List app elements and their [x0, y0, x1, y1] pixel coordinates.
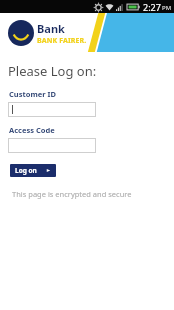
- staticText: Bank: [37, 21, 65, 36]
- staticText: Log on: [15, 166, 37, 175]
- button[interactable]: Log on: [10, 164, 56, 177]
- staticText: This page is encrypted and secure: [12, 189, 132, 199]
- staticText: Access Code: [9, 125, 55, 135]
- button[interactable]: [8, 102, 96, 117]
- staticText: 2:27: [143, 1, 161, 13]
- button[interactable]: [8, 138, 96, 153]
- staticText: Customer ID: [9, 89, 56, 99]
- staticText: Please Log on:: [8, 62, 97, 80]
- staticText: BANK FAIRER.: [37, 36, 87, 46]
- staticText: PM: [162, 4, 172, 12]
